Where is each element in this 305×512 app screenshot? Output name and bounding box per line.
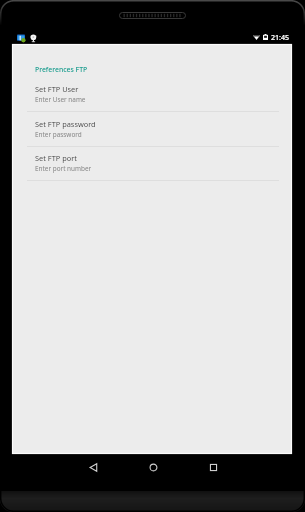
staticText: Enter port number bbox=[35, 164, 92, 173]
staticText: 21:45 bbox=[271, 32, 290, 42]
staticText: Set FTP User bbox=[35, 84, 79, 94]
button[interactable]: Back bbox=[63, 454, 123, 480]
button[interactable]: Set FTP User bbox=[12, 77, 292, 111]
staticText: Enter User name bbox=[35, 95, 86, 104]
button[interactable]: Home bbox=[123, 454, 183, 480]
button[interactable]: Recent apps bbox=[183, 454, 243, 480]
staticText: Enter password bbox=[35, 130, 82, 139]
staticText: Preferences FTP bbox=[35, 65, 88, 74]
button[interactable]: Set FTP password bbox=[12, 112, 292, 146]
staticText: Set FTP port bbox=[35, 153, 77, 163]
staticText: Set FTP password bbox=[35, 119, 96, 129]
button[interactable]: Set FTP port bbox=[12, 146, 292, 180]
